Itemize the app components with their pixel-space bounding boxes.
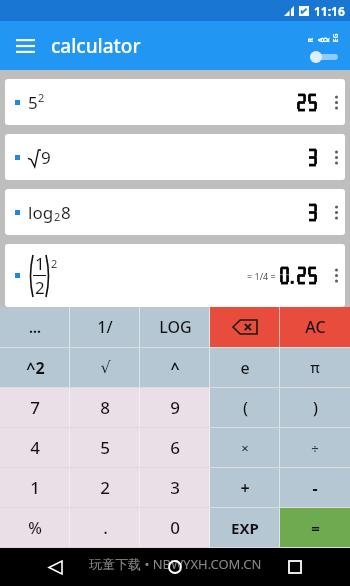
button[interactable]: + — [210, 468, 280, 507]
staticText: . — [103, 516, 108, 539]
staticText: calculator — [51, 33, 141, 59]
staticText: ( — [243, 397, 248, 419]
staticText: RAD — [305, 33, 329, 42]
staticText: 2 — [54, 209, 61, 224]
staticText: 4 — [30, 436, 40, 459]
staticText: 7 — [30, 396, 40, 419]
staticText: 0 — [170, 516, 180, 539]
staticText: ) — [313, 397, 318, 419]
staticText: log — [28, 201, 54, 224]
button[interactable]: ) — [280, 388, 350, 427]
staticText: 2 — [100, 476, 110, 499]
staticText: % — [28, 517, 42, 539]
button[interactable]: Backspace — [210, 307, 280, 347]
staticText: 5 — [28, 91, 38, 114]
button[interactable]: EXP — [210, 508, 280, 547]
button[interactable]: 3 — [140, 468, 210, 507]
staticText: EXP — [231, 518, 259, 538]
button[interactable]: - — [280, 468, 350, 507]
staticText: = 1/4 = — [247, 270, 276, 282]
staticText: 1 — [35, 252, 45, 275]
button[interactable]: More options — [327, 244, 345, 307]
button[interactable]: ^2 — [0, 348, 70, 387]
staticText: 8 — [61, 201, 71, 224]
staticText: 2 — [38, 90, 45, 105]
staticText: 玩童下载 • NBWYXH.COM.CN — [89, 555, 262, 573]
button[interactable]: 9 — [5, 134, 345, 180]
staticText: 6 — [170, 436, 180, 459]
button[interactable]: log — [5, 189, 345, 235]
button[interactable]: 0 — [140, 508, 210, 547]
button[interactable]: AC — [280, 307, 350, 347]
staticText: DEG — [320, 33, 340, 42]
staticText: + — [240, 477, 250, 499]
staticText: π — [310, 358, 320, 377]
button[interactable]: ^ — [140, 348, 210, 387]
button[interactable]: Toggle radians or degrees — [303, 24, 345, 68]
staticText: 3 — [170, 476, 180, 499]
staticText: 9 — [170, 396, 180, 419]
staticText: × — [241, 439, 249, 457]
button[interactable]: 5 — [5, 79, 345, 125]
staticText: 2 — [35, 276, 45, 299]
button[interactable]: 1/ — [70, 307, 140, 347]
staticText: √ — [100, 358, 111, 377]
button[interactable]: 6 — [140, 428, 210, 467]
button[interactable]: More options — [327, 189, 345, 235]
button[interactable]: 5 — [70, 428, 140, 467]
staticText: e — [240, 357, 250, 379]
button[interactable]: Recent apps — [280, 552, 310, 582]
staticText: 5 — [100, 436, 110, 459]
staticText: ^2 — [26, 357, 45, 379]
button[interactable]: ... — [0, 307, 70, 347]
button[interactable]: 7 — [0, 388, 70, 427]
staticText: 8 — [100, 396, 110, 419]
button[interactable]: . — [70, 508, 140, 547]
button[interactable]: 2 — [70, 468, 140, 507]
button[interactable]: ( — [210, 388, 280, 427]
staticText: AC — [305, 316, 326, 338]
staticText: ^ — [170, 357, 180, 379]
button[interactable]: % — [0, 508, 70, 547]
button[interactable]: 9 — [140, 388, 210, 427]
button[interactable]: More options — [327, 134, 345, 180]
button[interactable]: e — [210, 348, 280, 387]
button[interactable]: Open navigation menu — [6, 27, 44, 65]
staticText: - — [312, 477, 318, 499]
button[interactable]: 1 — [0, 468, 70, 507]
button[interactable]: π — [280, 348, 350, 387]
button[interactable]: 8 — [70, 388, 140, 427]
staticText: = — [311, 518, 320, 538]
button[interactable]: ÷ — [280, 428, 350, 467]
staticText: 2 — [51, 256, 58, 271]
button[interactable]: More options — [327, 79, 345, 125]
staticText: 11:16 — [314, 3, 345, 19]
button[interactable]: 1 — [5, 244, 345, 307]
staticText: ÷ — [311, 439, 319, 457]
staticText: ... — [29, 318, 41, 337]
staticText: LOG — [159, 316, 192, 338]
button[interactable]: Back — [40, 552, 70, 582]
button[interactable]: 4 — [0, 428, 70, 467]
button[interactable]: √ — [70, 348, 140, 387]
button[interactable]: LOG — [140, 307, 210, 347]
button[interactable]: Home — [160, 552, 190, 582]
button[interactable]: = — [280, 508, 350, 547]
button[interactable]: × — [210, 428, 280, 467]
staticText: 1 — [30, 476, 40, 499]
staticText: 1/ — [97, 316, 113, 338]
staticText: 9 — [41, 146, 51, 169]
